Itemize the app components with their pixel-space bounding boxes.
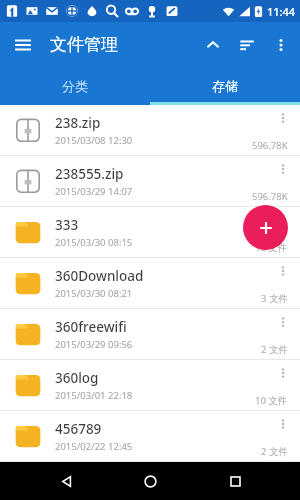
staticText: 456789 [55, 420, 102, 438]
staticText: 333 [55, 216, 79, 234]
staticText: 10 文件 [255, 394, 288, 407]
staticText: 文件管理 [50, 34, 118, 55]
staticText: 分类 [62, 78, 88, 94]
button[interactable]: Home [131, 462, 169, 500]
button[interactable]: 333 [0, 207, 300, 258]
staticText: 2 文件 [261, 343, 288, 356]
staticText: 2015/02/22 12:45 [55, 440, 133, 453]
staticText: 11:44 [267, 4, 296, 19]
staticText: 596.78K [252, 139, 288, 152]
button[interactable]: Item options [270, 258, 296, 284]
staticText: 2015/03/08 12:30 [55, 134, 133, 147]
button[interactable]: Item options [270, 207, 296, 233]
button[interactable]: Item options [270, 309, 296, 335]
staticText: 360log [55, 369, 99, 387]
button[interactable]: 存储 [150, 67, 300, 105]
button[interactable]: Add [243, 205, 288, 250]
button[interactable]: 238.zip [0, 105, 300, 156]
staticText: 16 文件 [255, 241, 288, 254]
button[interactable]: 360Download [0, 258, 300, 309]
staticText: 238.zip [55, 114, 101, 132]
button[interactable]: 238555.zip [0, 156, 300, 207]
button[interactable]: 456789 [0, 411, 300, 462]
staticText: 2015/03/30 08:15 [55, 236, 133, 249]
button[interactable]: Item options [270, 105, 296, 131]
button[interactable]: Back [47, 462, 85, 500]
staticText: 2015/03/01 22:18 [55, 389, 133, 402]
staticText: 596.78K [252, 190, 288, 203]
button[interactable]: Item options [270, 411, 296, 437]
button[interactable]: 分类 [0, 67, 150, 105]
button[interactable]: Item options [270, 156, 296, 182]
staticText: 360freewifi [55, 318, 127, 336]
staticText: 2 文件 [261, 445, 288, 458]
staticText: 2015/03/29 14:07 [55, 185, 133, 198]
staticText: 238555.zip [55, 165, 124, 183]
button[interactable]: Sort [230, 28, 264, 62]
button[interactable]: 360log [0, 360, 300, 411]
staticText: 3 文件 [261, 292, 288, 305]
button[interactable]: Menu [6, 28, 40, 62]
button[interactable]: Recents [216, 462, 254, 500]
button[interactable]: More options [264, 28, 298, 62]
staticText: 2015/03/30 08:21 [55, 287, 133, 300]
button[interactable]: Item options [270, 360, 296, 386]
staticText: 2015/03/29 09:56 [55, 338, 133, 351]
button[interactable]: Collapse [196, 28, 230, 62]
staticText: 存储 [212, 78, 238, 94]
staticText: 360Download [55, 267, 144, 285]
button[interactable]: 360freewifi [0, 309, 300, 360]
